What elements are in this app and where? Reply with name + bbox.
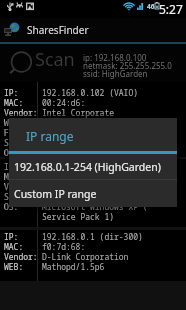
button[interactable]: Custom IP range [9,180,177,207]
button[interactable]: IP: [0,82,186,157]
button[interactable]: IP: [0,159,186,227]
staticText: OS: [4,147,19,158]
staticText: WEB: [4,117,24,128]
staticText: FTP: [4,127,24,138]
staticText: Microsoft Windows XP ( [42,201,148,212]
staticText: Service Pack 1) [42,211,114,222]
staticText: IP: [4,231,19,242]
staticText: Intel Corporate [42,107,114,118]
staticText: Vendor: [4,107,38,118]
button[interactable]: 192.168.0.1-254 (HighGarden) [9,154,177,179]
button[interactable]: Scan [0,44,186,82]
staticText: Vendor: [4,251,38,262]
staticText: IP: [4,161,19,172]
staticText: D-Link Corporation [42,251,129,262]
staticText: f0:7d:68: [42,241,86,252]
staticText: Vendor: [4,181,38,192]
staticText: Asustek Computer [42,181,119,192]
staticText: Mathopd/1.5p6 [42,261,105,272]
staticText: 00:24:d6: [42,97,86,108]
staticText: 00:1e:8c: [42,171,86,182]
other: Scan [2,44,36,78]
staticText: OS: [4,201,19,212]
staticText: Scan [35,47,75,72]
staticText: Windows XP [42,147,90,158]
staticText: 192.168.0.103 [42,161,105,172]
staticText: WEB: [4,261,24,272]
staticText: ip: 192.168.0.100 [83,52,147,63]
staticText: netmask: 255.255.255.0 [83,60,172,71]
button[interactable]: IP: [0,230,186,281]
staticText: WORKGROUP [42,191,86,202]
staticText: IP range [26,128,74,144]
staticText: 192.168.0.102 (VAIO) [42,87,138,98]
staticText: 5:27 [159,1,183,17]
staticText: SharesFinder [27,23,89,37]
staticText: Custom IP range [14,187,97,201]
staticText: MAC: [4,97,24,108]
staticText: WORKGROUP [42,137,86,148]
staticText: MAC: [4,171,24,182]
other: SharesFinder [4,21,21,38]
staticText: MAC: [4,241,24,252]
staticText: 46 [147,2,155,11]
button[interactable]: SharesFinder [0,18,186,42]
staticText: 192.168.0.1-254 (HighGarden) [14,160,161,174]
staticText: IP: [4,87,19,98]
staticText: 192.168.0.1 (dir-300) [42,231,143,242]
staticText: SMB: [4,191,24,202]
staticText: SMB: [4,137,24,148]
staticText: ssid: HighGarden [83,68,148,79]
